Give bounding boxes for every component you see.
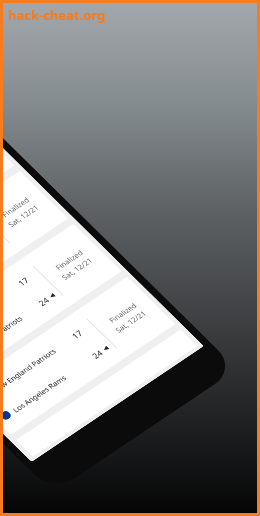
staticText: 17: [15, 274, 31, 288]
staticText: Finalized: [53, 248, 85, 272]
staticText: Los Angeles Rams: [10, 373, 68, 414]
staticText: 24: [89, 347, 105, 361]
button[interactable]: Los Angeles Rams: [16, 329, 197, 457]
staticText: 17: [69, 327, 85, 341]
button[interactable]: Denver Broncos: [0, 171, 68, 329]
staticText: 24: [36, 294, 52, 308]
staticText: New England Patriots: [0, 313, 25, 361]
staticText: New England Patriots: [0, 346, 58, 394]
staticText: Sat, 12/21: [113, 308, 148, 334]
staticText: hack-cheat.org: [8, 6, 106, 24]
button[interactable]: Buffalo Bills: [0, 224, 122, 382]
button[interactable]: New England Patriots: [0, 276, 175, 435]
staticText: Finalized: [0, 195, 31, 219]
staticText: Sat, 12/21: [5, 202, 41, 229]
button[interactable]: Tennessee Titans: [0, 118, 14, 277]
staticText: Sat, 12/21: [59, 255, 95, 282]
staticText: Finalized: [106, 301, 138, 324]
